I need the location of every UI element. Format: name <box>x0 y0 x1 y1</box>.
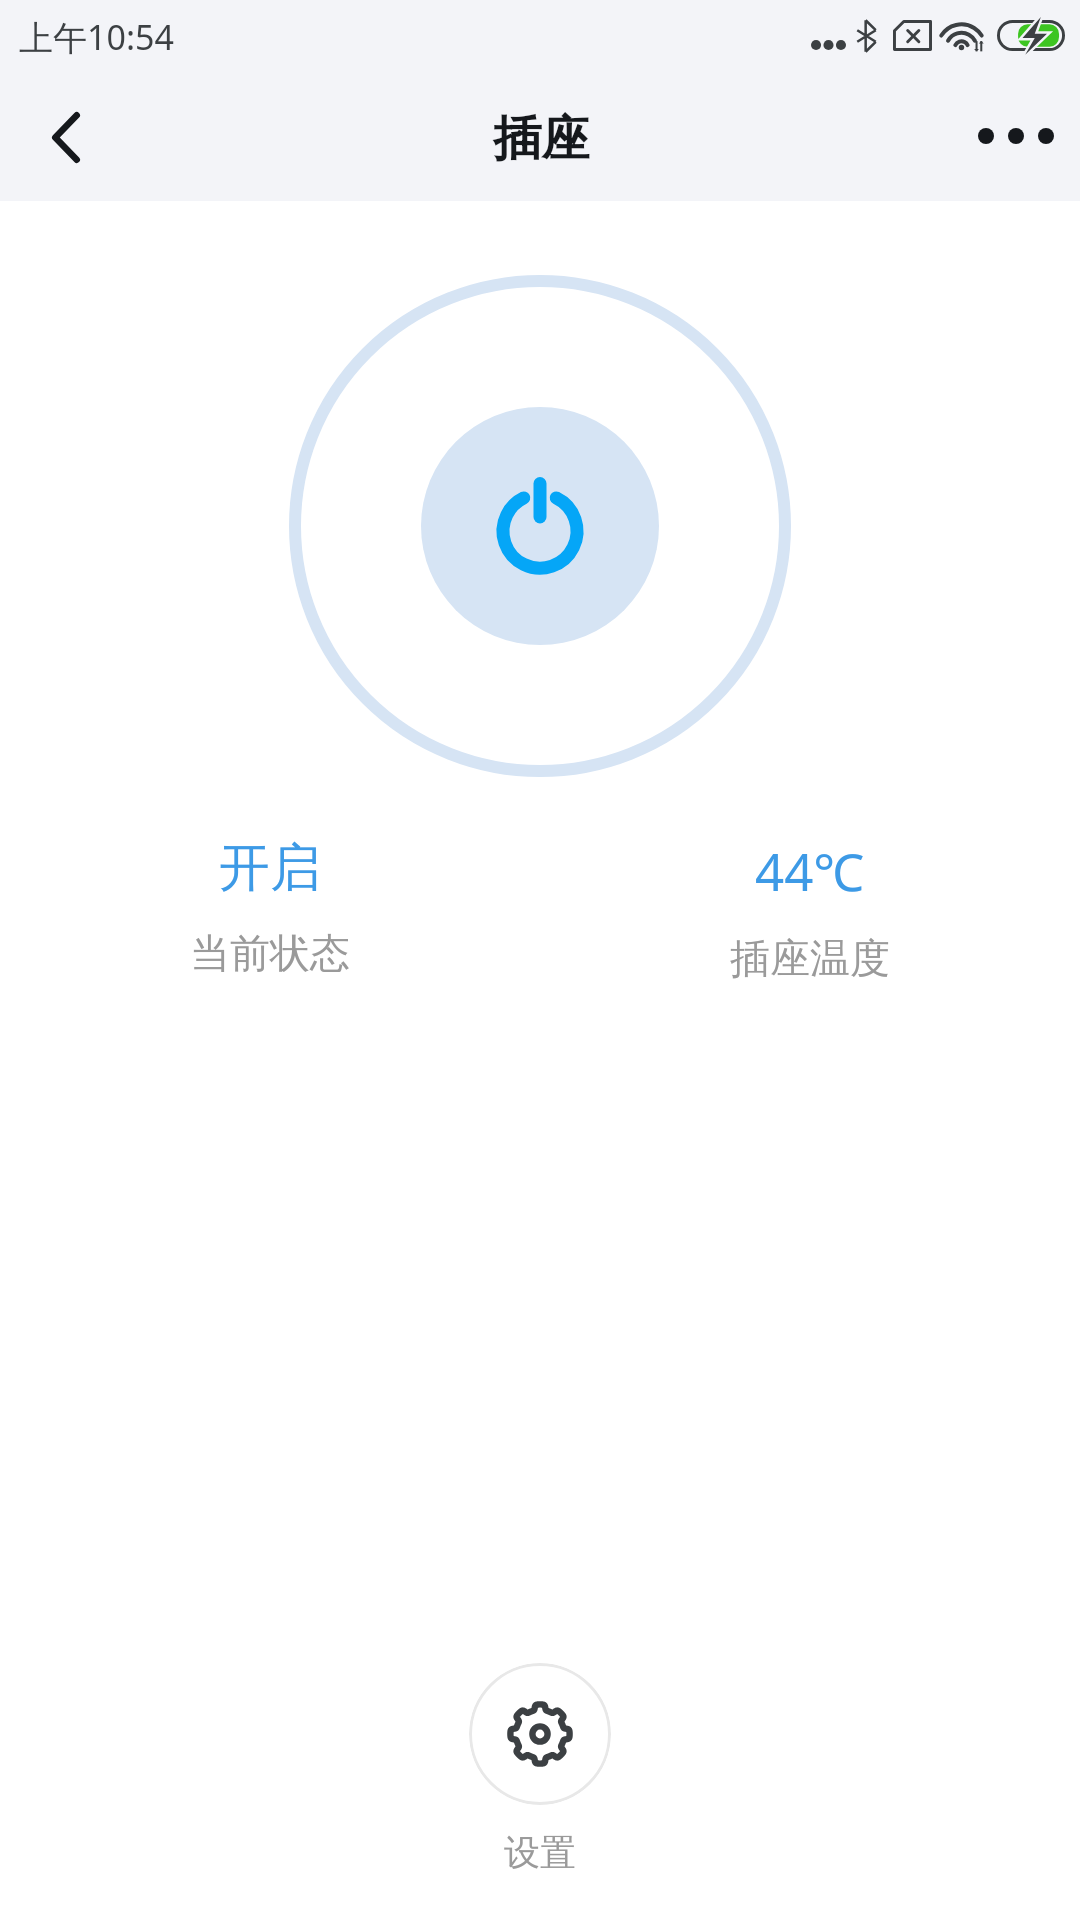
button[interactable]: More options <box>940 68 1080 201</box>
staticText: 设置 <box>504 1830 576 1875</box>
staticText: 插座 <box>493 109 589 169</box>
staticText: 开启 <box>219 836 321 900</box>
staticText: 44℃ <box>755 836 865 905</box>
button[interactable]: Settings <box>469 1663 611 1805</box>
staticText: 上午10:54 <box>19 14 174 60</box>
button[interactable]: Power toggle <box>289 275 791 777</box>
button[interactable]: Back <box>0 68 130 201</box>
staticText: 当前状态 <box>190 928 350 978</box>
staticText: 插座温度 <box>730 933 890 983</box>
